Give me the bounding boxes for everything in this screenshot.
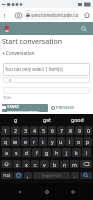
button[interactable]: y bbox=[48, 137, 56, 146]
button[interactable]: Logo bbox=[3, 25, 11, 33]
button[interactable]: Search bbox=[78, 23, 90, 35]
button[interactable]: a bbox=[2, 148, 11, 157]
button[interactable]: Recent apps bbox=[67, 186, 79, 198]
button[interactable]: 5 bbox=[39, 126, 47, 135]
staticText: p bbox=[86, 138, 90, 145]
button[interactable]: Search with camera bbox=[13, 10, 23, 20]
button[interactable] bbox=[3, 87, 90, 94]
button[interactable]: Conversation bbox=[2, 50, 35, 56]
button[interactable]: Backspace bbox=[80, 160, 92, 168]
staticText: START CONVERSATION bbox=[7, 104, 48, 112]
staticText: s bbox=[15, 149, 18, 156]
button[interactable]: j bbox=[62, 148, 71, 157]
button[interactable]: g bbox=[42, 148, 51, 157]
button[interactable]: k bbox=[72, 148, 81, 157]
staticText: v bbox=[43, 161, 46, 168]
button[interactable]: ?123 bbox=[1, 172, 13, 179]
button[interactable]: l bbox=[82, 148, 91, 157]
button[interactable]: , bbox=[24, 172, 32, 179]
button[interactable]: z bbox=[13, 160, 21, 168]
button[interactable]: v bbox=[40, 160, 49, 168]
button[interactable]: You can only select 1 item(s) bbox=[3, 63, 90, 76]
staticText: r bbox=[33, 138, 36, 145]
button[interactable]: Tabs bbox=[1, 11, 9, 19]
staticText: g bbox=[14, 116, 18, 123]
button[interactable]: 1 bbox=[1, 126, 10, 135]
button[interactable]: Search bbox=[80, 172, 92, 179]
button[interactable]: e bbox=[21, 137, 29, 146]
staticText: 5 bbox=[42, 127, 45, 134]
button[interactable]: 3 bbox=[21, 126, 29, 135]
staticText: u bbox=[59, 138, 63, 145]
staticText: y bbox=[51, 138, 54, 145]
button[interactable]: Emoji bbox=[14, 172, 23, 179]
staticText: You can only select 1 item(s) bbox=[5, 66, 63, 72]
staticText: 2 bbox=[14, 127, 17, 134]
staticText: w bbox=[13, 138, 18, 145]
button[interactable]: 0 bbox=[84, 126, 92, 135]
button[interactable]: 8 bbox=[66, 126, 74, 135]
button[interactable]: Space bbox=[33, 172, 70, 179]
staticText: . bbox=[74, 172, 76, 179]
button[interactable]: n bbox=[60, 160, 69, 168]
staticText: n bbox=[63, 161, 67, 168]
staticText: o bbox=[77, 138, 81, 145]
staticText: 4 bbox=[33, 127, 36, 134]
button[interactable]: c bbox=[31, 160, 39, 168]
button[interactable]: i bbox=[66, 137, 74, 146]
button[interactable]: f bbox=[32, 148, 41, 157]
staticText: 1 bbox=[3, 12, 7, 19]
button[interactable]: w bbox=[11, 137, 20, 146]
staticText: f bbox=[36, 149, 38, 156]
button[interactable]: 7 bbox=[57, 126, 65, 135]
button[interactable]: Shift bbox=[1, 160, 12, 168]
button[interactable]: t bbox=[39, 137, 47, 146]
staticText: sanctionedunicode.com bbox=[31, 12, 79, 18]
button[interactable]: Back bbox=[14, 186, 26, 198]
button[interactable]: get bbox=[31, 114, 62, 125]
staticText: 1 bbox=[4, 127, 7, 134]
button[interactable]: q bbox=[1, 137, 10, 146]
staticText: 6 bbox=[51, 127, 54, 134]
button[interactable]: 9 bbox=[75, 126, 83, 135]
staticText: Start conversation bbox=[2, 37, 63, 47]
button[interactable]: . bbox=[71, 172, 79, 179]
staticText: English (US) bbox=[42, 173, 61, 178]
button[interactable]: d bbox=[22, 148, 31, 157]
button[interactable]: START CONVERSATION bbox=[2, 104, 48, 112]
button[interactable]: Home bbox=[82, 10, 92, 20]
staticText: g bbox=[45, 149, 49, 156]
button[interactable]: 6 bbox=[48, 126, 56, 135]
button[interactable]: u bbox=[57, 137, 65, 146]
staticText: ?123 bbox=[3, 173, 11, 178]
button[interactable]: sanctionedunicode.com bbox=[23, 10, 79, 20]
staticText: l bbox=[86, 149, 88, 156]
button[interactable]: h bbox=[52, 148, 61, 157]
staticText: q bbox=[4, 138, 8, 145]
staticText: Conversation bbox=[6, 50, 35, 56]
staticText: 8 bbox=[69, 127, 72, 134]
button[interactable]: b bbox=[50, 160, 59, 168]
button[interactable]: p bbox=[84, 137, 92, 146]
button[interactable]: Home bbox=[41, 186, 53, 198]
button[interactable]: g bbox=[0, 114, 31, 125]
staticText: 9 bbox=[78, 127, 81, 134]
button[interactable]: o bbox=[75, 137, 83, 146]
button[interactable]: r bbox=[30, 137, 38, 146]
staticText: d bbox=[25, 149, 29, 156]
staticText: h bbox=[55, 149, 59, 156]
button[interactable]: x bbox=[22, 160, 30, 168]
button[interactable]: PREVIEW bbox=[51, 104, 74, 112]
staticText: 7 bbox=[60, 127, 63, 134]
button[interactable]: 0 bbox=[3, 77, 90, 83]
staticText: 0 bbox=[87, 127, 90, 134]
button[interactable]: m bbox=[70, 160, 79, 168]
staticText: m bbox=[72, 161, 77, 168]
staticText: PREVIEW bbox=[56, 105, 74, 111]
button[interactable]: s bbox=[12, 148, 21, 157]
button[interactable]: good bbox=[62, 114, 93, 125]
staticText: e bbox=[24, 138, 27, 145]
button[interactable]: 4 bbox=[30, 126, 38, 135]
staticText: j bbox=[66, 149, 68, 156]
button[interactable]: 2 bbox=[11, 126, 20, 135]
